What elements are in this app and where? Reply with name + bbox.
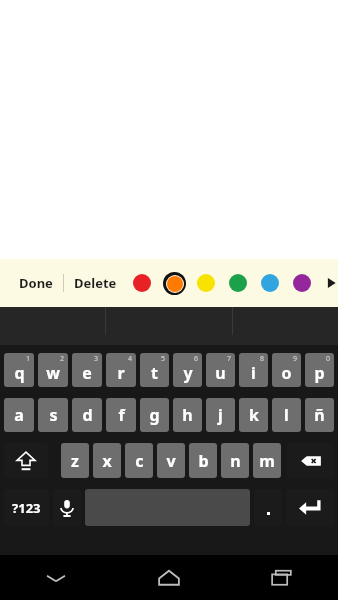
staticText: f [118,404,125,426]
staticText: 8 [260,354,265,364]
button[interactable]: z [61,443,89,478]
staticText: m [259,450,275,472]
button[interactable]: c [125,443,153,478]
button[interactable]: Voice input [53,489,81,526]
staticText: s [49,404,58,426]
staticText: 4 [128,354,133,364]
button[interactable]: 6 [173,353,202,387]
button[interactable]: 2 [38,353,68,387]
button[interactable]: n [221,443,249,478]
button[interactable]: m [253,443,281,478]
button[interactable]: Hide keyboard [0,555,112,600]
staticText: y [183,362,193,384]
button[interactable]: Recent apps [225,555,338,600]
button[interactable]: Yellow [190,267,222,299]
button[interactable]: Green [222,267,254,299]
button[interactable]: Home [112,555,225,600]
button[interactable]: Backspace [287,443,334,478]
staticText: i [251,362,256,384]
staticText: w [46,362,60,384]
staticText: 6 [194,354,199,364]
staticText: d [82,404,93,426]
staticText: 7 [227,354,232,364]
staticText: h [182,404,193,426]
button[interactable]: 7 [206,353,235,387]
staticText: v [166,450,176,472]
button[interactable]: 5 [140,353,169,387]
button[interactable] [254,489,282,526]
staticText: p [314,362,325,384]
button[interactable]: a [4,398,34,432]
staticText: j [218,404,223,426]
staticText: ?123 [12,499,41,517]
staticText: a [14,404,24,426]
staticText: x [102,450,112,472]
button[interactable]: k [239,398,268,432]
button[interactable]: h [173,398,202,432]
button[interactable]: Enter [286,489,334,526]
button[interactable]: d [72,398,102,432]
staticText: n [230,450,241,472]
button[interactable]: Purple [286,267,318,299]
button[interactable]: 9 [272,353,301,387]
button[interactable]: Orange [158,267,190,299]
button[interactable]: Blue [254,267,286,299]
staticText: g [149,404,160,426]
button[interactable]: 3 [72,353,102,387]
staticText: Delete [74,274,117,292]
button[interactable]: 8 [239,353,268,387]
button[interactable]: v [157,443,185,478]
staticText: q [14,362,25,384]
staticText: t [151,362,158,384]
button[interactable]: s [38,398,68,432]
button[interactable]: Done [17,268,55,298]
button[interactable]: b [189,443,217,478]
button[interactable]: 0 [305,353,334,387]
button[interactable]: l [272,398,301,432]
button[interactable]: Shift [4,443,48,478]
button[interactable]: ñ [305,398,334,432]
button[interactable]: 1 [4,353,34,387]
staticText: 3 [94,354,99,364]
button[interactable]: Red [126,267,158,299]
button[interactable]: g [140,398,169,432]
staticText: 1 [26,354,31,364]
button[interactable]: x [93,443,121,478]
staticText: 2 [60,354,65,364]
button[interactable]: 4 [106,353,136,387]
staticText: ñ [314,404,325,426]
staticText: k [249,404,259,426]
staticText: z [71,450,79,472]
staticText: u [215,362,226,384]
staticText: 5 [161,354,166,364]
button[interactable]: ?123 [4,489,49,526]
staticText: 9 [293,354,298,364]
button[interactable]: j [206,398,235,432]
staticText: Done [19,274,53,292]
staticText: r [117,362,125,384]
button[interactable]: Delete [72,268,119,298]
button[interactable]: More colors [325,270,338,296]
staticText: b [198,450,209,472]
button[interactable]: f [106,398,136,432]
staticText: 0 [326,354,331,364]
staticText: e [82,362,92,384]
staticText: o [281,362,292,384]
staticText: c [135,450,144,472]
staticText: l [284,404,289,426]
